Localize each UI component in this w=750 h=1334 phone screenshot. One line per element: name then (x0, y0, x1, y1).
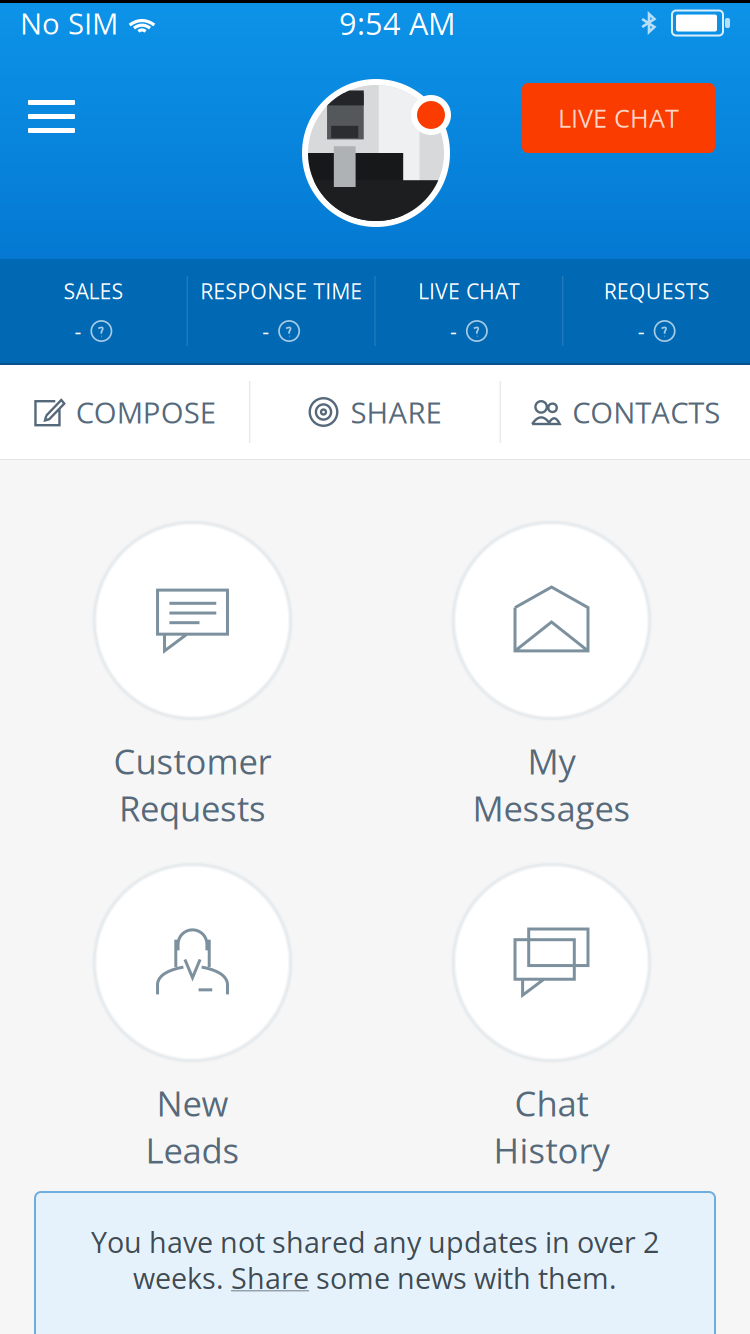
staticText: 9:54 AM (339, 2, 456, 44)
staticText: LIVE CHAT (418, 276, 520, 305)
button[interactable]: SALES (0, 259, 187, 363)
button[interactable]: RESPONSE TIME (188, 259, 375, 363)
staticText: - (262, 316, 269, 346)
button[interactable]: SHARE (250, 365, 500, 459)
button[interactable]: COMPOSE (0, 365, 249, 459)
staticText: New (156, 1079, 228, 1127)
staticText: Customer (113, 737, 271, 785)
staticText: weeks. Share some news with them. (133, 1258, 617, 1297)
button[interactable]: Menu (6, 77, 97, 156)
staticText: - (450, 316, 457, 346)
staticText: - (638, 316, 645, 346)
staticText: LIVE CHAT (558, 101, 679, 135)
staticText: - (74, 316, 81, 346)
staticText: Leads (145, 1126, 239, 1174)
staticText: COMPOSE (76, 392, 216, 432)
staticText: SALES (63, 276, 123, 305)
staticText: RESPONSE TIME (200, 276, 362, 305)
button[interactable]: Profile (302, 79, 468, 227)
button[interactable]: CONTACTS (501, 365, 750, 459)
staticText: You have not shared any updates in over … (91, 1222, 659, 1261)
button[interactable]: My (372, 520, 731, 828)
button[interactable]: LIVE CHAT (522, 83, 715, 153)
button[interactable]: Customer (13, 520, 372, 828)
staticText: No SIM (20, 3, 118, 43)
staticText: Requests (119, 784, 266, 832)
staticText: CONTACTS (572, 392, 720, 432)
button[interactable]: You have not shared any updates in over … (35, 1192, 715, 1334)
button[interactable]: Chat (372, 862, 731, 1170)
button[interactable]: LIVE CHAT (375, 259, 562, 363)
staticText: REQUESTS (604, 276, 710, 305)
button[interactable]: New (13, 862, 372, 1170)
staticText: SHARE (350, 392, 441, 432)
staticText: Messages (472, 784, 630, 832)
staticText: History (493, 1126, 609, 1174)
staticText: My (527, 737, 575, 785)
button[interactable]: REQUESTS (563, 259, 750, 363)
staticText: Chat (514, 1079, 588, 1127)
